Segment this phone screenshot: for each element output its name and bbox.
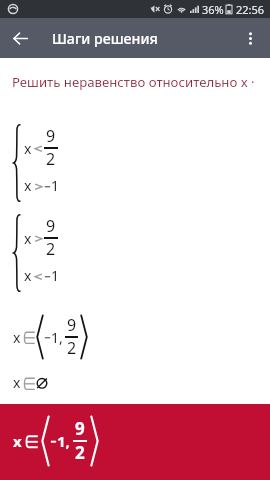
staticText: 9 — [46, 125, 56, 147]
staticText: 2 — [46, 148, 56, 170]
button[interactable]: Решить неравенство относительно x · — [12, 73, 255, 91]
staticText: 1, — [51, 328, 63, 347]
staticText: x — [24, 139, 32, 158]
staticText: 2 — [75, 441, 85, 464]
staticText: 2 — [46, 238, 56, 260]
staticText: 1 — [51, 266, 60, 285]
staticText: 9 — [67, 314, 77, 336]
staticText: 9 — [46, 215, 56, 237]
staticText: Шаги решения — [52, 29, 158, 48]
button[interactable]: More options — [230, 18, 270, 58]
staticText: 1 — [51, 176, 60, 195]
staticText: x — [13, 373, 21, 392]
staticText: 9 — [75, 417, 85, 440]
button[interactable]: Back — [0, 18, 40, 58]
staticText: x — [24, 229, 32, 248]
staticText: 1, — [57, 431, 70, 451]
staticText: 2 — [67, 337, 77, 359]
staticText: 36% — [202, 2, 224, 17]
staticText: x — [24, 176, 32, 195]
button[interactable] — [0, 404, 270, 480]
staticText: x — [13, 431, 22, 451]
staticText: x — [24, 266, 32, 285]
staticText: x — [13, 328, 21, 347]
staticText: 22:56 — [236, 2, 265, 17]
staticText: Решить неравенство относительно x · — [12, 73, 255, 91]
